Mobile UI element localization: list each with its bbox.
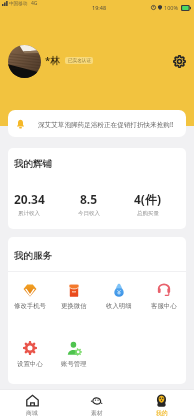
button[interactable]: 深艾艾草泡脚药足浴粉正在促销打折快来抢购!!: [8, 110, 186, 137]
button[interactable]: 我的: [129, 390, 194, 420]
staticText: 总购买量: [137, 210, 159, 217]
staticText: 修改手机号: [14, 302, 46, 310]
staticText: 8.5: [80, 191, 98, 207]
button[interactable]: 素材: [64, 390, 129, 420]
button[interactable]: 20.34: [8, 191, 59, 217]
staticText: 客服中心: [151, 302, 177, 310]
staticText: 累计收入: [18, 210, 40, 217]
staticText: 今日收入: [78, 210, 100, 217]
staticText: 已实名认证: [68, 58, 91, 64]
button[interactable]: 收入明细: [96, 283, 141, 310]
staticText: 我的服务: [14, 250, 52, 262]
staticText: 素材: [91, 409, 103, 416]
staticText: 商城: [26, 409, 38, 416]
button[interactable]: 客服中心: [141, 283, 186, 310]
staticText: *林: [45, 54, 60, 67]
staticText: 我的辉铺: [14, 158, 52, 170]
button[interactable]: 更换微信: [52, 283, 96, 310]
button[interactable]: 8.5: [59, 191, 118, 217]
staticText: 中国移动: [9, 1, 28, 7]
staticText: 100%: [164, 4, 179, 11]
button[interactable]: 修改手机号: [8, 283, 52, 310]
staticText: 19:48: [92, 4, 107, 11]
button[interactable]: 商城: [0, 390, 64, 420]
staticText: 设置中心: [17, 360, 43, 368]
staticText: 账号管理: [61, 360, 87, 368]
button[interactable]: Avatar: [8, 45, 41, 78]
staticText: 20.34: [14, 191, 45, 207]
staticText: 收入明细: [106, 302, 132, 310]
staticText: 更换微信: [61, 302, 87, 310]
staticText: 我的: [156, 409, 168, 416]
staticText: 4G: [31, 0, 38, 7]
button[interactable]: 账号管理: [52, 341, 96, 368]
staticText: 深艾艾草泡脚药足浴粉正在促销打折快来抢购!!: [38, 120, 174, 129]
staticText: 4(件): [134, 191, 162, 207]
button[interactable]: 4(件): [118, 191, 177, 217]
button[interactable]: Settings: [173, 55, 186, 68]
button[interactable]: 设置中心: [8, 341, 52, 368]
